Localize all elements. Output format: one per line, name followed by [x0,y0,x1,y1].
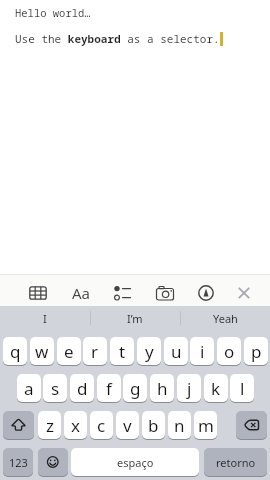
button[interactable]: w [30,337,54,365]
button[interactable]: p [244,337,268,365]
button[interactable]: n [168,411,191,439]
staticText: j [187,377,192,400]
staticText: v [123,414,132,437]
button[interactable]: I’m [90,306,180,331]
button[interactable]: a [17,374,41,402]
button[interactable]: k [204,374,228,402]
staticText: e [64,340,74,363]
button[interactable]: q [3,337,27,365]
button[interactable]: l [230,374,254,402]
button[interactable] [191,278,221,308]
staticText: a [24,377,34,400]
staticText: I’m [127,311,143,326]
button[interactable]: Aa [66,278,96,308]
button[interactable]: u [164,337,188,365]
staticText: d [77,377,88,400]
staticText: n [174,414,185,437]
staticText: w [35,340,49,363]
staticText: g [130,377,141,400]
button[interactable]: d [70,374,94,402]
staticText: m [198,414,214,437]
button[interactable]: t [110,337,134,365]
staticText: I [43,311,47,326]
staticText: p [251,340,262,363]
staticText: l [240,377,245,400]
button[interactable]: h [150,374,174,402]
staticText: b [148,414,159,437]
button[interactable]: z [38,411,61,439]
button[interactable]: g [123,374,147,402]
button[interactable]: v [116,411,139,439]
button[interactable]: retorno [204,448,267,476]
staticText: Aa [72,283,91,303]
staticText: s [51,377,60,400]
button[interactable] [38,448,68,476]
button[interactable] [3,411,34,439]
staticText: r [91,340,99,363]
button[interactable]: s [43,374,67,402]
button[interactable] [107,278,137,308]
staticText: k [211,377,221,400]
staticText: q [10,340,21,363]
staticText: f [106,377,112,400]
staticText: y [145,340,154,363]
button[interactable]: e [57,337,81,365]
button[interactable]: y [137,337,161,365]
button[interactable]: m [194,411,217,439]
button[interactable]: j [177,374,201,402]
button[interactable]: Yeah [180,306,270,331]
button[interactable]: i [190,337,214,365]
button[interactable] [150,278,180,308]
staticText: z [46,414,54,437]
button[interactable]: espaço [71,448,199,476]
button[interactable]: f [97,374,121,402]
staticText: c [97,414,106,437]
button[interactable] [236,411,267,439]
button[interactable]: 123 [3,448,33,476]
staticText: o [224,340,235,363]
staticText: retorno [216,455,256,470]
staticText: Yeah [213,311,238,326]
staticText: t [119,340,126,363]
button[interactable] [23,278,53,308]
staticText: Hello world… [15,6,91,20]
button[interactable]: x [64,411,87,439]
staticText: u [171,340,182,363]
button[interactable]: c [90,411,113,439]
button[interactable]: r [83,337,107,365]
staticText: h [157,377,168,400]
staticText: 123 [9,455,28,470]
button[interactable] [229,278,259,308]
staticText: i [200,340,205,363]
staticText: x [71,414,80,437]
button[interactable]: I [0,306,90,331]
button[interactable]: o [217,337,241,365]
staticText: Use the keyboard as a selector. [15,31,220,46]
button[interactable]: b [142,411,165,439]
staticText: espaço [117,455,154,470]
